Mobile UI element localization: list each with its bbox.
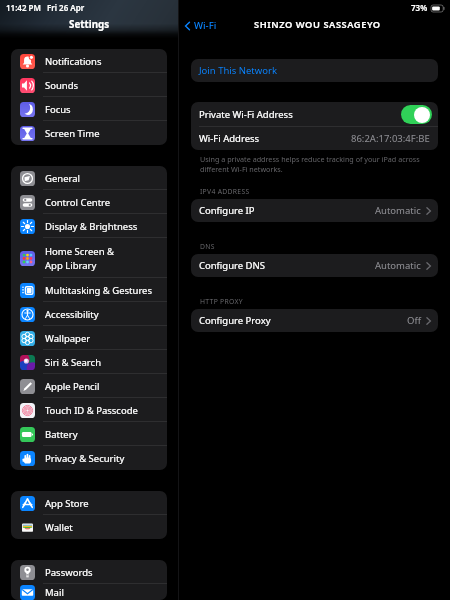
button[interactable]: Privacy & Security: [11, 446, 167, 470]
staticText: App Store: [45, 497, 89, 510]
button[interactable]: Battery: [11, 422, 167, 446]
staticText: Automatic: [375, 204, 421, 217]
staticText: Control Centre: [45, 196, 111, 209]
staticText: Configure Proxy: [199, 314, 271, 327]
button[interactable]: Wallpaper: [11, 326, 167, 350]
staticText: Using a private address helps reduce tra…: [200, 154, 436, 174]
button[interactable]: Back to Wi-Fi: [184, 19, 217, 32]
staticText: 73%: [411, 2, 428, 13]
staticText: Battery: [45, 428, 78, 441]
staticText: App Library: [45, 259, 97, 272]
staticText: Join This Network: [199, 64, 277, 77]
staticText: Passwords: [45, 566, 93, 579]
button[interactable]: Wallet: [11, 515, 167, 539]
staticText: Automatic: [375, 259, 421, 272]
staticText: Display & Brightness: [45, 220, 138, 233]
staticText: Wallpaper: [45, 332, 91, 345]
staticText: Apple Pencil: [45, 380, 100, 393]
button[interactable]: Notifications: [11, 49, 167, 73]
staticText: Sounds: [45, 79, 79, 92]
staticText: Accessibility: [45, 308, 99, 321]
staticText: DNS: [200, 242, 215, 251]
staticText: IPV4 ADDRESS: [200, 187, 250, 196]
staticText: Wallet: [45, 521, 73, 534]
button[interactable]: Touch ID & Passcode: [11, 398, 167, 422]
button[interactable]: Mail: [11, 584, 167, 600]
staticText: Focus: [45, 103, 71, 116]
staticText: Configure DNS: [199, 259, 265, 272]
staticText: Configure IP: [199, 204, 255, 217]
staticText: Privacy & Security: [45, 452, 125, 465]
staticText: Notifications: [45, 55, 102, 68]
button[interactable]: Wi-Fi Address: [199, 127, 430, 150]
button[interactable]: Sounds: [11, 73, 167, 97]
staticText: Fri 26 Apr: [47, 2, 85, 13]
staticText: Multitasking & Gestures: [45, 284, 153, 297]
staticText: Wi-Fi: [194, 19, 217, 32]
button[interactable]: General: [11, 166, 167, 190]
button[interactable]: Focus: [11, 97, 167, 121]
button[interactable]: Display & Brightness: [11, 214, 167, 238]
button[interactable]: Passwords: [11, 560, 167, 584]
button[interactable]: Configure DNS: [199, 254, 431, 277]
button[interactable]: Multitasking & Gestures: [11, 278, 167, 302]
staticText: Siri & Search: [45, 356, 102, 369]
staticText: Mail: [45, 586, 64, 599]
staticText: Wi-Fi Address: [199, 132, 260, 145]
button[interactable]: Home Screen &: [11, 238, 167, 278]
staticText: Settings: [69, 18, 110, 31]
staticText: Private Wi-Fi Address: [199, 108, 293, 121]
staticText: Home Screen &: [45, 245, 115, 258]
button[interactable]: Configure IP: [199, 199, 431, 222]
button[interactable]: Join This Network: [191, 59, 438, 82]
button[interactable]: Private Wi-Fi Address toggle, on: [401, 105, 432, 124]
staticText: SHINZO WOU SASSAGEYO: [254, 18, 381, 31]
button[interactable]: Control Centre: [11, 190, 167, 214]
button[interactable]: Configure Proxy: [199, 309, 431, 332]
button[interactable]: App Store: [11, 491, 167, 515]
button[interactable]: Screen Time: [11, 121, 167, 145]
staticText: Touch ID & Passcode: [45, 404, 138, 417]
staticText: Screen Time: [45, 127, 100, 140]
staticText: Off: [407, 314, 421, 327]
staticText: 86:2A:17:03:4F:BE: [351, 132, 430, 145]
staticText: 11:42 PM: [6, 2, 41, 13]
button[interactable]: Siri & Search: [11, 350, 167, 374]
staticText: General: [45, 172, 81, 185]
button[interactable]: Private Wi-Fi Address: [199, 102, 432, 126]
button[interactable]: Accessibility: [11, 302, 167, 326]
staticText: HTTP PROXY: [200, 297, 243, 306]
button[interactable]: Apple Pencil: [11, 374, 167, 398]
